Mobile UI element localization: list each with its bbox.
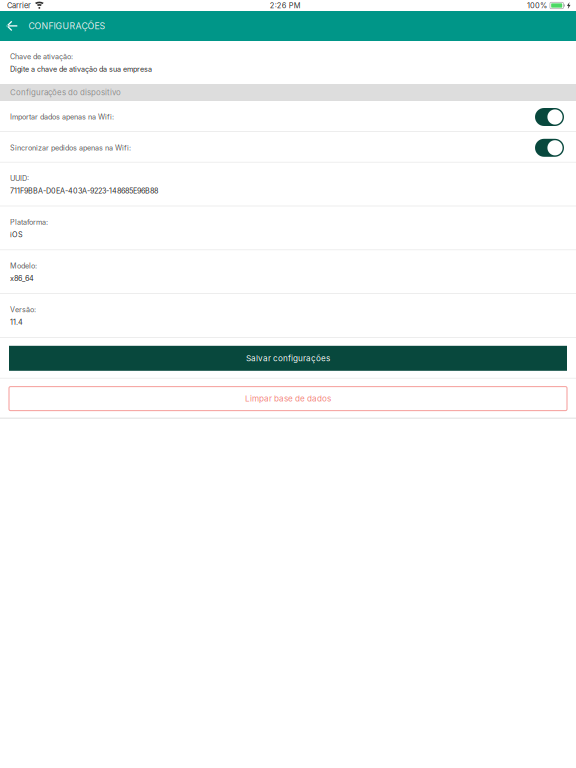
staticText: Sincronizar pedidos apenas na Wifi: bbox=[10, 143, 131, 152]
button[interactable]: Salvar configurações bbox=[0, 338, 576, 378]
button[interactable]: Back bbox=[0, 11, 24, 41]
staticText: Versão: bbox=[10, 305, 36, 314]
staticText: 2:26 PM bbox=[270, 1, 301, 10]
staticText: 11.4 bbox=[10, 318, 23, 327]
staticText: x86_64 bbox=[10, 274, 34, 283]
button[interactable]: Importar dados apenas na Wifi: bbox=[0, 101, 576, 131]
staticText: Plataforma: bbox=[10, 218, 48, 226]
button[interactable]: Limpar base de dados bbox=[0, 379, 576, 419]
staticText: UUID: bbox=[10, 174, 29, 183]
staticText: Digite a chave de ativação da sua empres… bbox=[10, 65, 152, 74]
staticText: Modelo: bbox=[10, 262, 37, 270]
staticText: CONFIGURAÇÕES bbox=[29, 21, 106, 31]
staticText: iOS bbox=[10, 230, 23, 239]
staticText: Limpar base de dados bbox=[245, 394, 331, 403]
staticText: 711F9BBA-D0EA-403A-9223-148685E96B88 bbox=[10, 186, 158, 195]
staticText: Configurações do dispositivo bbox=[10, 88, 121, 97]
staticText: 100% bbox=[527, 1, 547, 10]
staticText: Chave de ativação: bbox=[10, 52, 73, 61]
button[interactable]: Sincronizar pedidos apenas na Wifi: bbox=[0, 132, 576, 162]
staticText: Importar dados apenas na Wifi: bbox=[10, 113, 114, 121]
staticText: Carrier bbox=[7, 1, 31, 10]
staticText: Salvar configurações bbox=[246, 353, 330, 363]
